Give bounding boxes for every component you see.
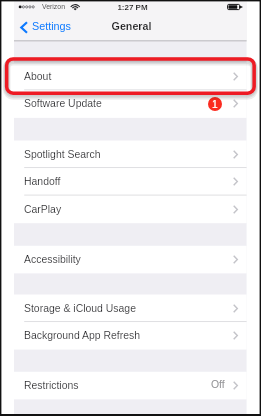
staticText: Verizon	[42, 3, 65, 11]
staticText: Storage & iCloud Usage	[24, 303, 136, 315]
staticText: Restrictions	[24, 380, 79, 392]
staticText: General	[15, 20, 248, 32]
button[interactable]: Spotlight Search	[14, 141, 247, 169]
button[interactable]: Handoff	[14, 168, 247, 196]
button[interactable]: Software Update	[14, 90, 247, 118]
staticText: About	[24, 71, 52, 83]
staticText: Spotlight Search	[24, 149, 101, 161]
staticText: Accessibility	[24, 254, 81, 266]
staticText: Software Update	[24, 98, 102, 110]
staticText: 1:27 PM	[14, 3, 251, 12]
button[interactable]: Accessibility	[14, 246, 247, 274]
button[interactable]: Background App Refresh	[14, 322, 247, 350]
staticText: Background App Refresh	[24, 330, 141, 342]
button[interactable]: Storage & iCloud Usage	[14, 295, 247, 323]
staticText: 1	[212, 99, 218, 110]
button[interactable]: Restrictions	[14, 372, 247, 400]
staticText: Settings	[32, 20, 72, 32]
staticText: Handoff	[24, 176, 61, 188]
staticText: CarPlay	[24, 204, 62, 216]
button[interactable]: CarPlay	[14, 196, 247, 224]
staticText: Off	[211, 379, 225, 391]
button[interactable]: Settings	[15, 16, 79, 35]
button[interactable]: About	[14, 63, 247, 91]
